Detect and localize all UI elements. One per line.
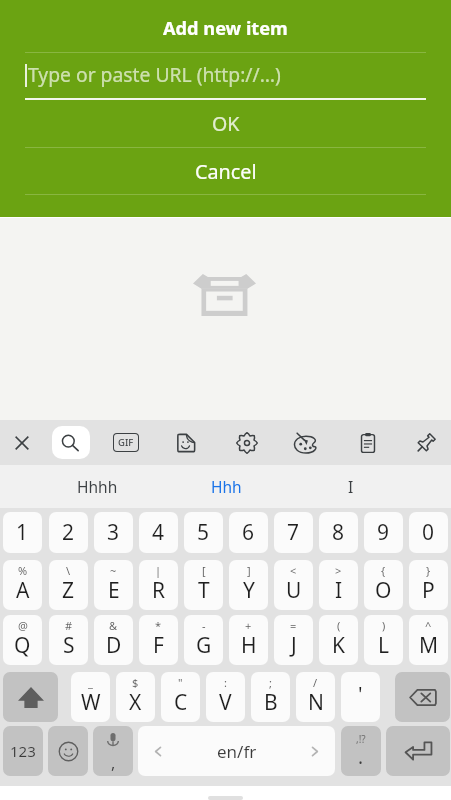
button[interactable]: #	[49, 615, 88, 665]
staticText: S	[63, 631, 75, 660]
staticText: @	[18, 618, 28, 633]
button[interactable]: Search	[52, 426, 90, 459]
staticText: $	[132, 675, 139, 690]
button[interactable]: +	[229, 615, 268, 665]
button[interactable]: 5	[184, 512, 223, 553]
button[interactable]: [	[184, 560, 223, 610]
staticText: 6	[242, 518, 255, 547]
button[interactable]: &	[94, 615, 133, 665]
staticText: I	[335, 576, 343, 605]
button[interactable]: Backspace	[395, 672, 450, 722]
staticText: ,	[111, 752, 116, 774]
button[interactable]: =	[274, 615, 313, 665]
button[interactable]: 3	[94, 512, 133, 553]
staticText: H	[241, 631, 257, 660]
button[interactable]: 9	[364, 512, 403, 553]
button[interactable]: "	[161, 672, 200, 722]
button[interactable]: Pin	[404, 420, 448, 465]
button[interactable]: 8	[319, 512, 358, 553]
staticText: L	[378, 631, 390, 660]
staticText: )	[382, 618, 386, 633]
button[interactable]: Stickers	[164, 420, 208, 465]
staticText: O	[375, 576, 392, 605]
button[interactable]: Enter	[386, 726, 450, 776]
staticText: \	[66, 563, 71, 578]
button[interactable]: 2	[49, 512, 88, 553]
button[interactable]: 7	[274, 512, 313, 553]
button[interactable]: Emoji	[48, 726, 88, 776]
button[interactable]: 123	[3, 726, 43, 776]
button[interactable]: Clipboard	[346, 420, 390, 465]
staticText: ,!?	[356, 732, 366, 746]
staticText: 7	[287, 518, 300, 547]
button[interactable]: <	[274, 560, 313, 610]
staticText: Add new item	[163, 16, 288, 41]
button[interactable]: Voice input	[93, 726, 133, 776]
button[interactable]: GIF	[104, 420, 148, 465]
button[interactable]: 6	[229, 512, 268, 553]
button[interactable]: ^	[409, 615, 448, 665]
staticText: B	[264, 688, 278, 717]
button[interactable]: %	[3, 560, 42, 610]
button[interactable]: {	[364, 560, 403, 610]
staticText: 1	[16, 518, 29, 547]
button[interactable]: Cancel	[0, 148, 451, 194]
button[interactable]: ,!?	[341, 726, 381, 776]
button[interactable]: Theme	[284, 420, 328, 465]
staticText: 9	[377, 518, 390, 547]
button[interactable]: 1	[3, 512, 42, 553]
button[interactable]: Hhhh	[35, 465, 159, 508]
button[interactable]: ~	[94, 560, 133, 610]
button[interactable]: Shift	[3, 672, 58, 722]
staticText: 8	[332, 518, 345, 547]
button[interactable]: |	[139, 560, 178, 610]
button[interactable]: @	[3, 615, 42, 665]
button[interactable]: :	[206, 672, 245, 722]
button[interactable]: 0	[409, 512, 448, 553]
staticText: P	[422, 576, 435, 605]
staticText: E	[108, 576, 120, 605]
staticText: ~	[110, 563, 117, 578]
button[interactable]: Close	[0, 420, 44, 465]
staticText: }	[426, 563, 431, 578]
button[interactable]: OK	[0, 100, 451, 146]
staticText: OK	[212, 110, 240, 137]
staticText: D	[106, 631, 122, 660]
button[interactable]: *	[139, 615, 178, 665]
button[interactable]: /	[296, 672, 335, 722]
staticText: {	[381, 563, 386, 578]
staticText: X	[129, 688, 142, 717]
staticText: F	[153, 631, 164, 660]
staticText: >	[335, 563, 342, 578]
button[interactable]: \	[49, 560, 88, 610]
staticText: V	[219, 688, 232, 717]
staticText: 3	[107, 518, 120, 547]
staticText: ^	[425, 618, 432, 633]
button[interactable]: >	[319, 560, 358, 610]
button[interactable]: ]	[229, 560, 268, 610]
button[interactable]: )	[364, 615, 403, 665]
button[interactable]: -	[184, 615, 223, 665]
staticText: +	[245, 618, 252, 633]
button[interactable]: 4	[139, 512, 178, 553]
staticText: 0	[422, 518, 435, 547]
staticText: K	[332, 631, 345, 660]
staticText: :	[224, 675, 227, 690]
staticText: "	[178, 675, 183, 690]
staticText: 123	[10, 741, 36, 761]
staticText: <	[290, 563, 297, 578]
button[interactable]: (	[319, 615, 358, 665]
staticText: /	[313, 675, 318, 690]
button[interactable]: en/fr	[138, 726, 335, 776]
button[interactable]: '	[341, 672, 380, 722]
button[interactable]: $	[116, 672, 155, 722]
staticText: ]	[247, 563, 251, 578]
button[interactable]: Settings	[225, 420, 269, 465]
button[interactable]: ;	[251, 672, 290, 722]
button[interactable]: Hhh	[164, 465, 288, 508]
staticText: Type or paste URL (http://…)	[28, 61, 281, 87]
staticText: |	[155, 563, 162, 578]
button[interactable]: I	[289, 465, 413, 508]
button[interactable]: _	[71, 672, 110, 722]
button[interactable]: }	[409, 560, 448, 610]
